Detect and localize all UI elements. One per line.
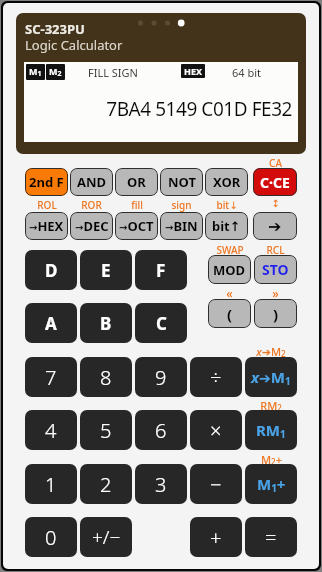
staticText: 6 [155, 417, 167, 444]
staticText: SC-323PU [25, 20, 85, 38]
staticText: RM1 [256, 420, 286, 441]
button[interactable]: →BIN [160, 212, 203, 240]
staticText: →DEC [75, 217, 109, 235]
staticText: C [156, 312, 167, 335]
staticText: » [272, 285, 279, 301]
staticText: − [210, 471, 222, 498]
staticText: x➔M2 [256, 344, 286, 360]
button[interactable]: 9 [135, 357, 187, 397]
staticText: OR [127, 173, 146, 191]
staticText: RM2 [260, 398, 282, 414]
staticText: M2 [49, 65, 62, 79]
button[interactable]: NOT [160, 168, 203, 196]
staticText: × [210, 417, 222, 444]
staticText: B [100, 312, 112, 335]
staticText: MOD [213, 261, 246, 279]
staticText: AND [77, 173, 107, 191]
staticText: →HEX [29, 217, 64, 235]
staticText: C·CE [260, 173, 290, 192]
staticText: sign [171, 198, 192, 212]
staticText: + [210, 524, 222, 551]
staticText: F [156, 259, 166, 282]
button[interactable]: Shift right [253, 212, 297, 240]
button[interactable]: 7 [25, 357, 77, 397]
button[interactable]: B [80, 303, 132, 343]
button[interactable]: 4 [25, 410, 77, 450]
button[interactable]: 8 [80, 357, 132, 397]
button[interactable]: ÷ [190, 357, 242, 397]
staticText: 4 [45, 417, 57, 444]
staticText: ( [227, 304, 233, 324]
button[interactable]: C·CE [253, 168, 297, 196]
button[interactable]: 1 [25, 464, 77, 504]
staticText: 9 [155, 364, 167, 391]
button[interactable]: E [80, 250, 132, 290]
staticText: →BIN [165, 217, 198, 235]
staticText: A [45, 312, 57, 335]
staticText: 0 [45, 524, 57, 551]
staticText: NOT [168, 173, 196, 191]
staticText: M2+ [261, 452, 282, 468]
staticText: SWAP [216, 243, 244, 257]
staticText: 7BA4 5149 C01D FE32 [24, 96, 292, 122]
staticText: ÷ [210, 364, 222, 391]
staticText: = [265, 524, 277, 551]
staticText: x➔M1 [251, 367, 291, 388]
staticText: M1 [29, 65, 42, 79]
button[interactable]: OR [115, 168, 158, 196]
staticText: ROR [81, 198, 102, 212]
button[interactable]: 3 [135, 464, 187, 504]
button[interactable]: C [135, 303, 187, 343]
staticText: D [45, 259, 58, 282]
staticText: 2nd F [29, 173, 64, 191]
staticText: Logic Calculator [25, 36, 123, 54]
button[interactable]: + [190, 517, 242, 557]
button[interactable]: A [25, 303, 77, 343]
staticText: CA [269, 156, 282, 170]
button[interactable]: Plus minus [80, 517, 132, 557]
button[interactable]: AND [70, 168, 113, 196]
button[interactable]: XOR [205, 168, 248, 196]
staticText: bit↑ [212, 217, 241, 235]
staticText: +/− [92, 524, 121, 550]
staticText: ➔ [268, 217, 282, 236]
button[interactable]: − [190, 464, 242, 504]
staticText: →OCT [119, 217, 154, 235]
staticText: 7 [45, 364, 57, 391]
staticText: ↕ [271, 198, 280, 210]
button[interactable]: Recall memory 1 [245, 410, 297, 450]
button[interactable]: MOD [208, 255, 251, 284]
staticText: RCL [266, 243, 285, 257]
button[interactable]: = [245, 517, 297, 557]
button[interactable]: ) [254, 299, 297, 328]
staticText: 5 [100, 417, 112, 444]
staticText: M1+ [257, 474, 286, 495]
button[interactable]: 2nd F [25, 168, 68, 196]
button[interactable]: →DEC [70, 212, 113, 240]
button[interactable]: ( [208, 299, 251, 328]
button[interactable]: 0 [25, 517, 77, 557]
staticText: « [226, 285, 233, 301]
staticText: 8 [100, 364, 112, 391]
button[interactable]: Add to memory 1 [245, 464, 297, 504]
button[interactable]: 5 [80, 410, 132, 450]
button[interactable]: STO [254, 255, 297, 284]
button[interactable]: bit↑ [205, 212, 248, 240]
button[interactable]: × [190, 410, 242, 450]
staticText: E [101, 259, 111, 282]
button[interactable]: 2 [80, 464, 132, 504]
staticText: ROL [37, 198, 57, 212]
staticText: FILL SIGN [88, 65, 138, 80]
button[interactable]: 6 [135, 410, 187, 450]
button[interactable]: Store to memory 1 [245, 357, 297, 397]
button[interactable]: →HEX [25, 212, 68, 240]
staticText: fill [131, 198, 143, 212]
staticText: 64 bit [232, 65, 262, 80]
staticText: 2 [100, 471, 112, 498]
button[interactable]: F [135, 250, 187, 290]
staticText: STO [262, 260, 289, 279]
button[interactable]: →OCT [115, 212, 158, 240]
staticText: 1 [45, 471, 57, 498]
button[interactable]: D [25, 250, 77, 290]
staticText: HEX [184, 65, 202, 77]
